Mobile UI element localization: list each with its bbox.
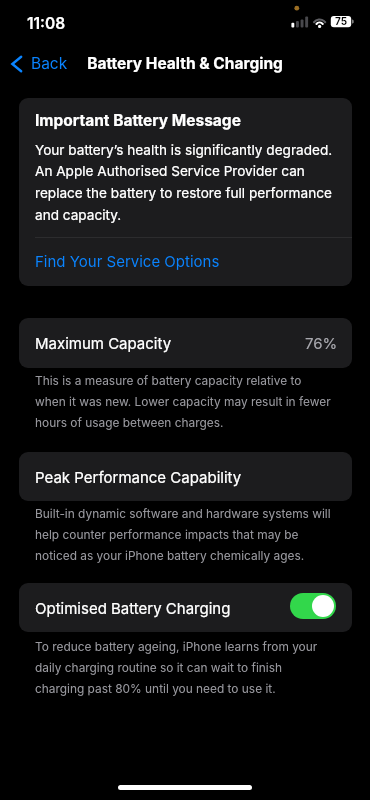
staticText: Battery Health & Charging — [0, 54, 370, 73]
staticText: Your battery’s health is significantly d… — [35, 142, 338, 224]
staticText: To reduce battery ageing, iPhone learns … — [35, 639, 331, 696]
staticText: Built-in dynamic software and hardware s… — [35, 506, 331, 563]
button[interactable]: Find Your Service Options — [19, 237, 352, 285]
staticText: Optimised Battery Charging — [35, 599, 231, 617]
staticText: 11:08 — [27, 14, 66, 33]
staticText: 76% — [305, 334, 338, 352]
button[interactable]: Maximum Capacity — [19, 318, 352, 368]
staticText: Maximum Capacity — [35, 334, 172, 352]
button[interactable]: Optimised Battery Charging — [290, 593, 336, 619]
button[interactable]: Back — [4, 48, 76, 80]
staticText: Peak Performance Capability — [35, 468, 242, 486]
staticText: This is a measure of battery capacity re… — [35, 373, 331, 430]
staticText: Important Battery Message — [35, 111, 241, 130]
staticText: Back — [31, 54, 68, 73]
button[interactable]: Optimised Battery Charging — [19, 583, 352, 632]
staticText: 75 — [335, 15, 348, 27]
button[interactable]: Peak Performance Capability — [19, 452, 352, 501]
staticText: Find Your Service Options — [35, 252, 220, 270]
